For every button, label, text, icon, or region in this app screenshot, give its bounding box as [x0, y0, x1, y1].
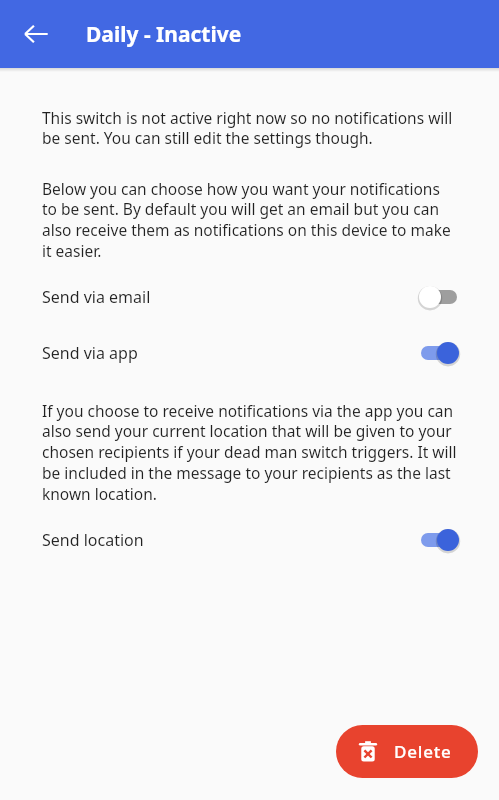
staticText: This switch is not active right now so n…	[42, 107, 457, 149]
button[interactable]: Send location	[0, 523, 499, 557]
staticText: Daily - Inactive	[86, 20, 242, 49]
button[interactable]: Delete	[336, 725, 478, 778]
staticText: Send via email	[42, 286, 151, 308]
button[interactable]: Send via app	[0, 336, 499, 370]
button[interactable]: Send via email	[0, 280, 499, 314]
staticText: Below you can choose how you want your n…	[42, 178, 457, 262]
staticText: If you choose to receive notifications v…	[42, 400, 457, 505]
staticText: Delete	[394, 740, 452, 763]
other: Delete	[356, 740, 380, 764]
staticText: Send location	[42, 529, 144, 551]
button[interactable]: Back	[12, 10, 60, 58]
staticText: Send via app	[42, 342, 138, 364]
